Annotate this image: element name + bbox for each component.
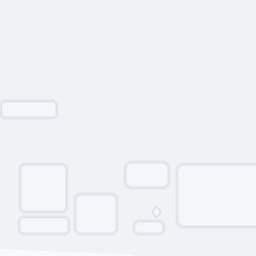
button[interactable]: Detail panel [177,164,256,227]
button[interactable]: Tag [1,101,57,118]
button[interactable]: Tile one [20,164,67,212]
button[interactable]: Tile two [75,194,117,234]
button[interactable]: Tile three [125,162,169,188]
